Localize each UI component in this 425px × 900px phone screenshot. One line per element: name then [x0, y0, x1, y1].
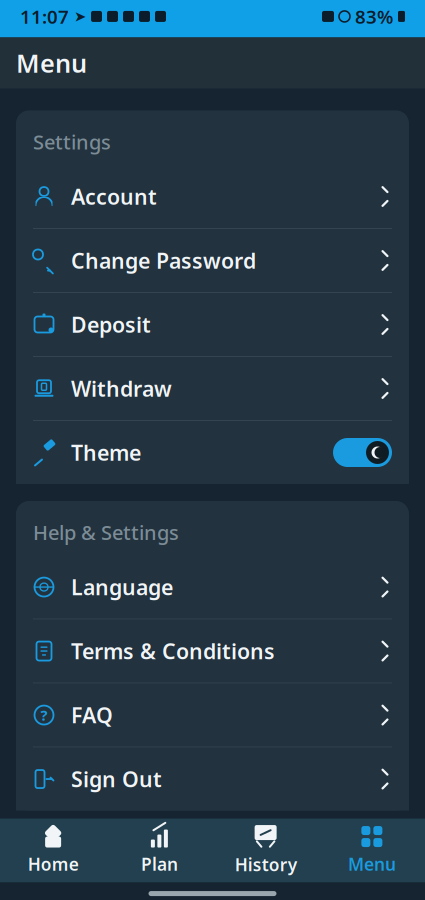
staticText: Change Password	[71, 246, 256, 275]
button[interactable]: Language	[16, 556, 409, 619]
staticText: Plan	[141, 853, 178, 876]
button[interactable]: Deposit	[16, 293, 409, 356]
staticText: Theme	[71, 438, 141, 467]
staticText: Terms & Conditions	[71, 637, 275, 665]
staticText: 11:07	[20, 4, 69, 29]
staticText: Withdraw	[71, 374, 172, 403]
button[interactable]: Menu	[319, 821, 425, 881]
staticText: Help & Settings	[33, 519, 179, 546]
button[interactable]: Home	[0, 821, 106, 881]
button[interactable]: History	[212, 821, 319, 881]
staticText: Settings	[33, 128, 111, 155]
button[interactable]: Account	[16, 165, 409, 228]
button[interactable]: Terms & Conditions	[16, 620, 409, 683]
staticText: Sign Out	[71, 765, 162, 793]
staticText: History	[235, 853, 297, 876]
button[interactable]: ?	[16, 684, 409, 747]
staticText: Account	[71, 182, 157, 211]
button[interactable]: Sign Out	[16, 748, 409, 811]
staticText: 83%	[355, 4, 393, 29]
staticText: Deposit	[71, 310, 151, 339]
staticText: ?	[40, 705, 47, 725]
button[interactable]: Plan	[106, 821, 212, 881]
button[interactable]: Withdraw	[16, 357, 409, 420]
staticText: Home	[28, 853, 79, 876]
button[interactable]: Change Password	[16, 229, 409, 292]
staticText: ➤	[74, 8, 86, 25]
staticText: FAQ	[71, 701, 113, 729]
button[interactable]: Theme	[16, 421, 409, 484]
staticText: Menu	[16, 46, 87, 80]
staticText: Language	[71, 573, 173, 601]
staticText: Menu	[348, 853, 396, 876]
